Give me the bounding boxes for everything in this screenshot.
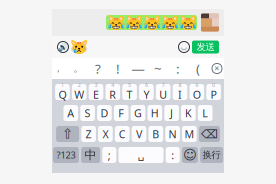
button[interactable]: ( [188,57,208,79]
staticText: 😿 [70,39,88,55]
button[interactable]: Z [81,126,96,142]
button[interactable]: A [63,105,78,121]
staticText: U [159,87,167,102]
button[interactable]: 3 [89,84,103,100]
staticText: P [211,87,217,102]
staticText: ~ [154,60,162,77]
staticText: 8 [178,81,181,88]
button[interactable]: N [165,126,180,142]
button[interactable]: G [131,105,145,121]
button[interactable]: ~ [148,57,168,79]
staticText: X [102,127,108,141]
staticText: 发送 [196,41,214,53]
staticText: ⌫ [201,127,218,141]
button[interactable]: Delete [208,57,226,79]
staticText: 😹😹😹😹😹 [106,14,196,31]
button[interactable]: ⇧ [56,126,79,142]
button[interactable]: J [164,105,179,121]
button[interactable]: L [198,105,212,121]
button[interactable]: ?123 [53,147,79,163]
button[interactable]: 4 [105,84,120,100]
staticText: ; [108,148,111,162]
button[interactable]: X [98,126,113,142]
staticText: A [67,106,74,120]
button[interactable]: ☺ [182,147,198,163]
staticText: ?123 [56,149,75,161]
staticText: M [184,127,194,141]
staticText: S [85,106,91,120]
staticText: 中 [85,148,97,162]
staticText: K [185,106,192,120]
button[interactable]: H [147,105,162,121]
staticText: 0 [212,81,215,88]
button[interactable]: 5 [122,84,137,100]
button[interactable]: 。 [68,57,88,79]
staticText: Y [143,87,149,102]
staticText: 9 [195,81,198,88]
staticText: — [131,60,144,77]
staticText: ? [95,60,101,77]
button[interactable]: 9 [189,84,204,100]
staticText: ☺ [183,147,197,162]
button[interactable]: V [132,126,146,142]
staticText: ， [53,63,62,74]
button[interactable]: S [80,105,95,121]
button[interactable]: D [97,105,112,121]
staticText: : [171,148,174,162]
staticText: E [93,87,99,102]
button[interactable]: ， [48,57,68,79]
staticText: Z [86,127,92,141]
staticText: 7 [162,81,165,88]
button[interactable]: 换行 [200,147,223,163]
staticText: ⇧ [62,126,73,141]
staticText: D [100,106,108,120]
staticText: 。 [73,63,82,74]
staticText: 换行 [203,149,221,161]
button[interactable]: Voice input [56,35,70,58]
button[interactable]: : [166,147,180,163]
staticText: 🔊 [58,42,68,51]
button[interactable]: — [128,57,148,79]
button[interactable]: ␣ [118,147,163,163]
button[interactable]: 中 [81,147,100,163]
button[interactable]: Emoji keyboard [176,35,192,58]
staticText: : [176,60,180,77]
staticText: 2 [78,81,81,88]
staticText: O [193,87,201,102]
staticText: ◡ [181,43,187,51]
button[interactable]: K [181,105,196,121]
button[interactable]: 7 [156,84,170,100]
staticText: H [151,106,159,120]
button[interactable]: 0 [206,84,221,100]
button[interactable]: ; [102,147,116,163]
button[interactable]: F [114,105,128,121]
button[interactable]: ! [108,57,128,79]
staticText: W [74,87,84,102]
staticText: F [118,106,124,120]
staticText: Q [58,87,66,102]
staticText: ( [196,60,200,77]
button[interactable]: C [115,126,129,142]
staticText: C [119,127,126,141]
button[interactable]: : [168,57,188,79]
staticText: L [202,106,208,120]
staticText: 4 [111,81,114,88]
button[interactable]: B [148,126,163,142]
button[interactable]: 2 [72,84,86,100]
staticText: ✕ [214,65,220,72]
staticText: 5 [128,81,131,88]
button[interactable]: ? [88,57,108,79]
staticText: ! [116,60,120,77]
button[interactable]: 8 [173,84,187,100]
staticText: R [109,87,116,102]
button[interactable]: 发送 [192,40,219,53]
button[interactable]: 6 [139,84,154,100]
button[interactable]: ⌫ [199,126,220,142]
staticText: 3 [94,81,97,88]
staticText: 6 [145,81,148,88]
staticText: I [178,87,182,102]
staticText: J [170,106,173,120]
button[interactable]: M [182,126,197,142]
button[interactable]: 1 [55,84,70,100]
staticText: N [169,127,177,141]
